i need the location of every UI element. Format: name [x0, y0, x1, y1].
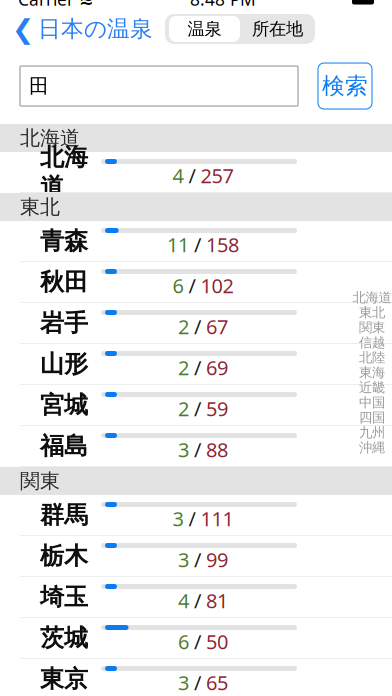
staticText: ❮	[12, 14, 34, 44]
staticText: 所在地	[252, 18, 303, 40]
staticText: 岩手	[40, 308, 88, 338]
button[interactable]: 東京	[0, 659, 392, 696]
staticText: /	[194, 231, 201, 258]
staticText: 2	[178, 313, 189, 340]
staticText: /	[194, 436, 201, 463]
staticText: 北海道	[20, 126, 80, 150]
staticText: 59	[206, 395, 228, 422]
staticText: 65	[206, 669, 228, 696]
button[interactable]: 宮城	[0, 385, 392, 426]
staticText: /	[194, 395, 201, 422]
staticText: /	[194, 628, 201, 655]
staticText: 沖縄	[359, 439, 385, 456]
button[interactable]: 山形	[0, 344, 392, 385]
staticText: 宮城	[40, 390, 88, 420]
staticText: 東京	[40, 664, 88, 694]
staticText: 茨城	[40, 623, 88, 653]
staticText: 111	[200, 505, 233, 532]
button[interactable]: 秋田	[0, 262, 392, 303]
button[interactable]: 所在地	[242, 14, 313, 44]
staticText: 群馬	[40, 500, 88, 530]
staticText: 関東	[359, 319, 385, 336]
staticText: /	[194, 587, 201, 614]
staticText: 山形	[40, 349, 88, 379]
staticText: 信越	[359, 334, 385, 351]
staticText: 50	[206, 628, 228, 655]
staticText: 福島	[40, 431, 88, 461]
button[interactable]: 群馬	[0, 495, 392, 536]
staticText: 近畿	[359, 379, 385, 396]
staticText: 67	[206, 313, 228, 340]
staticText: 東北	[359, 304, 385, 321]
staticText: 検索	[322, 72, 368, 100]
staticText: 北陸	[359, 349, 385, 366]
staticText: /	[194, 546, 201, 573]
staticText: 81	[206, 587, 228, 614]
staticText: 4	[172, 162, 183, 189]
staticText: 北海道	[40, 142, 88, 201]
staticText: 関東	[20, 469, 60, 493]
staticText: 田	[29, 74, 49, 98]
staticText: 3	[178, 436, 189, 463]
staticText: /	[188, 272, 195, 299]
staticText: 2	[178, 354, 189, 381]
staticText: /	[194, 669, 201, 696]
staticText: /	[188, 505, 195, 532]
button[interactable]: 温泉	[167, 14, 242, 44]
staticText: 6	[178, 628, 189, 655]
staticText: 8:48 PM	[190, 0, 256, 10]
staticText: /	[188, 162, 195, 189]
staticText: 158	[206, 231, 239, 258]
staticText: 99	[206, 546, 228, 573]
staticText: 88	[206, 436, 228, 463]
staticText: 青森	[40, 226, 88, 256]
staticText: 東海	[359, 364, 385, 381]
button[interactable]: 茨城	[0, 618, 392, 659]
staticText: 257	[200, 162, 233, 189]
staticText: 東北	[20, 195, 60, 219]
staticText: 3	[172, 505, 183, 532]
staticText: 69	[206, 354, 228, 381]
staticText: ≋	[79, 0, 94, 9]
staticText: 埼玉	[40, 582, 88, 612]
button[interactable]: ❮	[0, 8, 153, 50]
staticText: /	[194, 313, 201, 340]
staticText: 四国	[359, 409, 385, 426]
button[interactable]: 検索	[318, 63, 372, 109]
staticText: 3	[178, 669, 189, 696]
staticText: 栃木	[40, 541, 88, 571]
staticText: 日本の温泉	[38, 15, 153, 43]
button[interactable]: 栃木	[0, 536, 392, 577]
staticText: /	[194, 354, 201, 381]
staticText: 北海道	[352, 289, 391, 306]
staticText: Carrier	[18, 0, 74, 10]
button[interactable]: 福島	[0, 426, 392, 467]
staticText: 2	[178, 395, 189, 422]
staticText: 102	[200, 272, 233, 299]
button[interactable]: 埼玉	[0, 577, 392, 618]
button[interactable]: 岩手	[0, 303, 392, 344]
staticText: 4	[178, 587, 189, 614]
staticText: 中国	[359, 394, 385, 411]
staticText: 6	[172, 272, 183, 299]
staticText: 11	[167, 231, 189, 258]
staticText: 九州	[359, 424, 385, 441]
staticText: 温泉	[187, 18, 221, 40]
button[interactable]: 青森	[0, 221, 392, 262]
staticText: 3	[178, 546, 189, 573]
button[interactable]: 北海道	[0, 152, 392, 193]
staticText: 秋田	[40, 267, 88, 297]
